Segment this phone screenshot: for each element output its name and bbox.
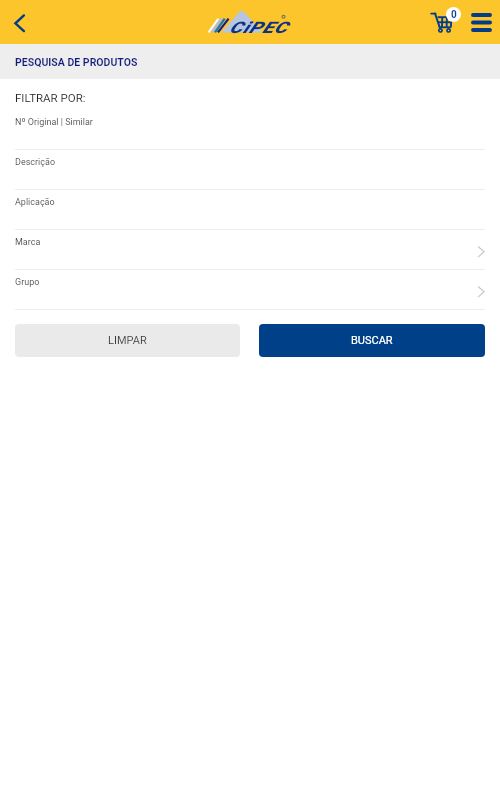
- button[interactable]: Menu: [464, 0, 498, 44]
- button[interactable]: Descrição: [0, 150, 500, 190]
- staticText: Marca: [15, 237, 41, 248]
- button[interactable]: Back: [0, 0, 40, 44]
- button[interactable]: LIMPAR: [15, 324, 240, 357]
- button[interactable]: Shopping cart: [426, 0, 466, 39]
- staticText: BUSCAR: [351, 334, 393, 347]
- staticText: Grupo: [15, 277, 40, 288]
- button[interactable]: BUSCAR: [259, 324, 485, 357]
- button[interactable]: Grupo: [0, 270, 500, 310]
- button[interactable]: Aplicação: [0, 190, 500, 230]
- button[interactable]: Marca: [0, 230, 500, 270]
- staticText: LIMPAR: [108, 334, 147, 347]
- staticText: PESQUISA DE PRODUTOS: [15, 56, 138, 68]
- staticText: Descrição: [15, 157, 56, 168]
- staticText: FILTRAR POR:: [15, 91, 86, 104]
- staticText: 0: [451, 9, 457, 21]
- staticText: Nº Original | Similar: [15, 117, 93, 128]
- staticText: Aplicação: [15, 197, 55, 208]
- button[interactable]: Nº Original | Similar: [0, 110, 500, 150]
